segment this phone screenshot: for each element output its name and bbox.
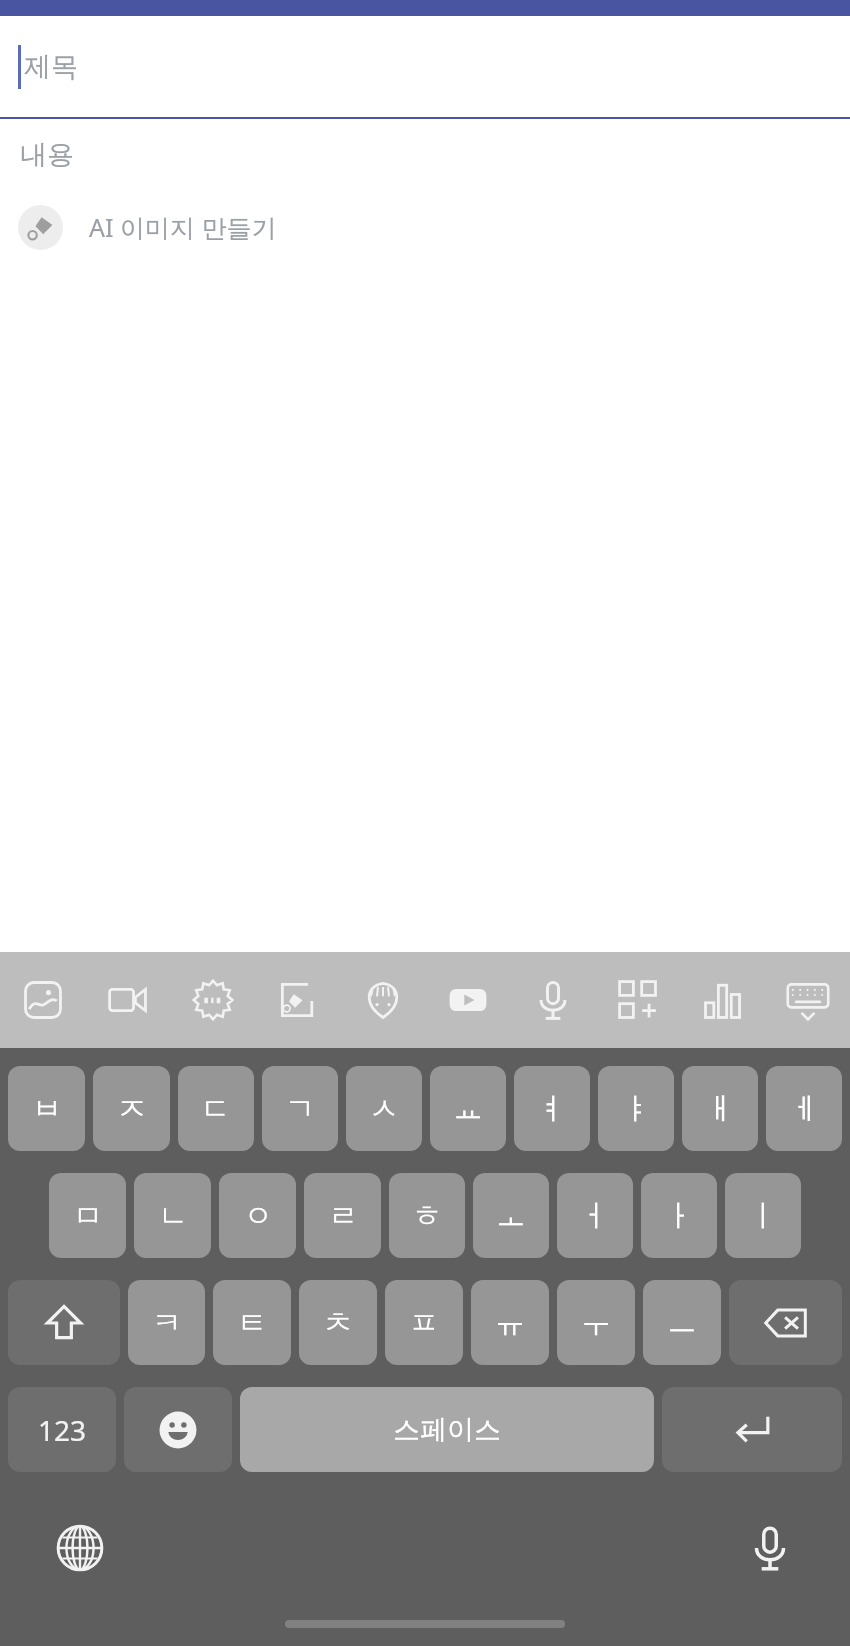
button[interactable]: ㅍ bbox=[385, 1280, 463, 1365]
button[interactable]: Change language bbox=[0, 1500, 160, 1596]
button[interactable]: 스페이스 bbox=[240, 1387, 654, 1472]
staticText: ㅑ bbox=[621, 1090, 651, 1128]
staticText: ㅍ bbox=[409, 1304, 439, 1342]
staticText: ㅂ bbox=[32, 1090, 62, 1128]
button[interactable]: ㅛ bbox=[430, 1066, 506, 1151]
staticText: ㅇ bbox=[243, 1197, 273, 1235]
button[interactable]: ㄱ bbox=[262, 1066, 338, 1151]
staticText: ㅎ bbox=[412, 1197, 442, 1235]
button[interactable]: ㄷ bbox=[178, 1066, 254, 1151]
button[interactable]: Image bbox=[0, 952, 85, 1048]
button[interactable]: Poll bbox=[680, 952, 765, 1048]
button[interactable]: ㅌ bbox=[213, 1280, 291, 1365]
button[interactable]: ㅔ bbox=[766, 1066, 842, 1151]
staticText: ㅜ bbox=[581, 1304, 611, 1342]
staticText: ㄱ bbox=[285, 1090, 315, 1128]
button[interactable]: ㅜ bbox=[557, 1280, 635, 1365]
button[interactable]: Voice input bbox=[690, 1500, 850, 1596]
button[interactable]: Emoji bbox=[124, 1387, 232, 1472]
staticText: 내용 bbox=[20, 138, 74, 172]
button[interactable]: ㄹ bbox=[304, 1173, 381, 1258]
staticText: ㄷ bbox=[201, 1090, 231, 1128]
button[interactable]: GIF bbox=[170, 952, 255, 1048]
staticText: ㅏ bbox=[664, 1197, 694, 1235]
staticText: ㅅ bbox=[369, 1090, 399, 1128]
button[interactable]: Enter bbox=[662, 1387, 842, 1472]
button[interactable]: ㅏ bbox=[641, 1173, 717, 1258]
staticText: ㅐ bbox=[705, 1090, 735, 1128]
staticText: ㅋ bbox=[152, 1304, 182, 1342]
staticText: ㄴ bbox=[158, 1197, 188, 1235]
button[interactable]: ㅐ bbox=[682, 1066, 758, 1151]
button[interactable]: ㅠ bbox=[471, 1280, 549, 1365]
staticText: ㅠ bbox=[495, 1304, 525, 1342]
button[interactable]: 제목 bbox=[0, 16, 850, 117]
button[interactable]: QR code bbox=[595, 952, 680, 1048]
staticText: ㅓ bbox=[580, 1197, 610, 1235]
staticText: ㅌ bbox=[237, 1304, 267, 1342]
button[interactable]: Key bbox=[8, 1280, 120, 1365]
button[interactable]: ㅈ bbox=[93, 1066, 170, 1151]
button[interactable]: ㅣ bbox=[725, 1173, 801, 1258]
staticText: ㅣ bbox=[748, 1197, 778, 1235]
button[interactable]: ㄴ bbox=[134, 1173, 211, 1258]
button[interactable]: ㅂ bbox=[8, 1066, 85, 1151]
button[interactable]: YouTube bbox=[425, 952, 510, 1048]
staticText: ㅗ bbox=[496, 1197, 526, 1235]
staticText: 123 bbox=[38, 1411, 87, 1449]
button[interactable]: AI 이미지 만들기 bbox=[0, 191, 850, 263]
button[interactable]: ㅗ bbox=[473, 1173, 549, 1258]
button[interactable]: Key bbox=[729, 1280, 842, 1365]
staticText: 스페이스 bbox=[393, 1413, 501, 1447]
button[interactable]: Hide keyboard bbox=[765, 952, 850, 1048]
button[interactable]: ㅇ bbox=[219, 1173, 296, 1258]
staticText: ㅁ bbox=[73, 1197, 103, 1235]
button[interactable]: Voice bbox=[510, 952, 595, 1048]
button[interactable]: ㅅ bbox=[346, 1066, 422, 1151]
button[interactable]: ㅓ bbox=[557, 1173, 633, 1258]
button[interactable]: ㅁ bbox=[49, 1173, 126, 1258]
button[interactable]: Sticker bbox=[340, 952, 425, 1048]
button[interactable]: Video bbox=[85, 952, 170, 1048]
staticText: ㅔ bbox=[789, 1090, 819, 1128]
staticText: ㅛ bbox=[453, 1090, 483, 1128]
button[interactable]: 내용 bbox=[0, 119, 850, 191]
staticText: 제목 bbox=[24, 50, 78, 84]
button[interactable]: ㅋ bbox=[128, 1280, 205, 1365]
button[interactable]: ㅕ bbox=[514, 1066, 590, 1151]
staticText: AI 이미지 만들기 bbox=[89, 210, 277, 244]
staticText: ㄹ bbox=[328, 1197, 358, 1235]
button[interactable]: ㅡ bbox=[643, 1280, 721, 1365]
button[interactable]: ㅑ bbox=[598, 1066, 674, 1151]
button[interactable]: ㅎ bbox=[389, 1173, 465, 1258]
button[interactable]: 123 bbox=[8, 1387, 116, 1472]
button[interactable]: AI drawing bbox=[255, 952, 340, 1048]
button[interactable]: ㅊ bbox=[299, 1280, 377, 1365]
staticText: ㅊ bbox=[323, 1304, 353, 1342]
staticText: ㅕ bbox=[537, 1090, 567, 1128]
staticText: ㅈ bbox=[117, 1090, 147, 1128]
staticText: ㅡ bbox=[667, 1304, 697, 1342]
